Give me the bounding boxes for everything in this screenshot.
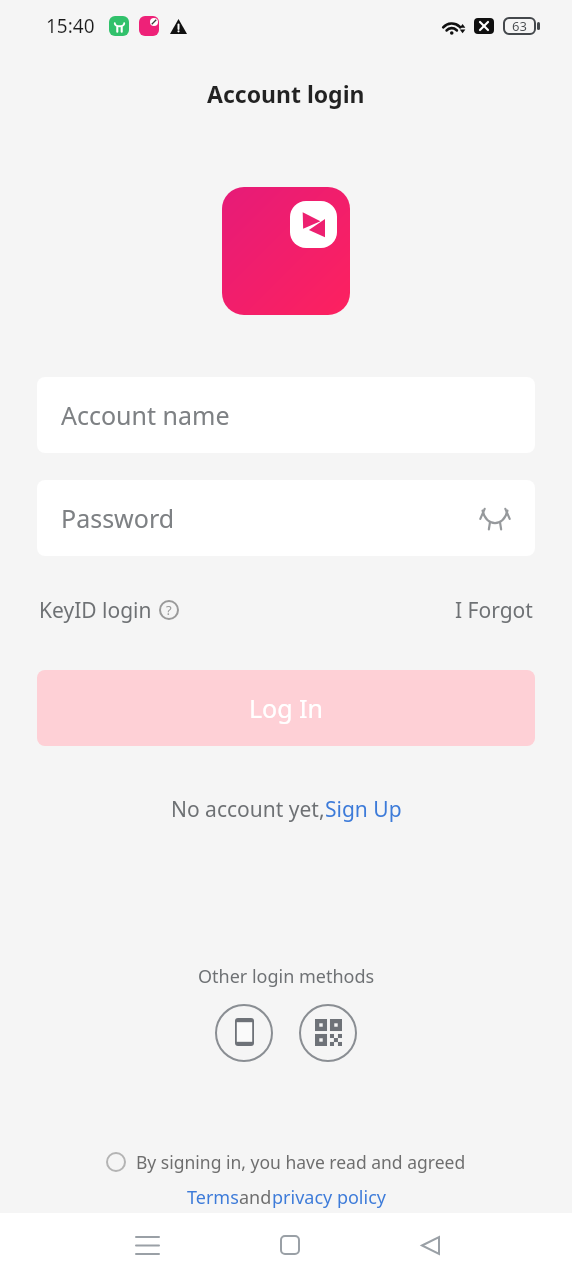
button[interactable]: Agree to terms bbox=[106, 1150, 466, 1174]
staticText: ? bbox=[166, 601, 172, 619]
button[interactable]: KeyID login bbox=[39, 581, 179, 639]
button[interactable]: Show password bbox=[477, 500, 513, 536]
staticText: Terms bbox=[187, 1185, 239, 1210]
staticText: 63 bbox=[512, 17, 527, 35]
staticText: Password bbox=[61, 501, 175, 535]
staticText: Log In bbox=[249, 691, 324, 725]
button[interactable]: Log In bbox=[37, 670, 535, 746]
staticText: privacy policy bbox=[272, 1185, 386, 1210]
staticText: Other login methods bbox=[198, 964, 375, 989]
button[interactable]: Login with QR code bbox=[299, 1004, 357, 1062]
staticText: KeyID login bbox=[39, 596, 152, 625]
button[interactable]: Sign Up bbox=[325, 795, 402, 824]
staticText: By signing in, you have read and agreed bbox=[136, 1150, 466, 1174]
staticText: Account name bbox=[61, 398, 230, 432]
button[interactable]: Login with phone bbox=[215, 1004, 273, 1062]
staticText: and bbox=[239, 1185, 272, 1210]
button[interactable]: Password bbox=[37, 480, 535, 556]
button[interactable]: Terms bbox=[187, 1185, 239, 1210]
button[interactable]: Home bbox=[262, 1217, 318, 1273]
button[interactable]: I Forgot bbox=[455, 581, 533, 639]
staticText: No account yet, bbox=[171, 795, 325, 824]
button[interactable]: Back bbox=[402, 1217, 458, 1273]
button[interactable]: Account name bbox=[37, 377, 535, 453]
staticText: I Forgot bbox=[455, 596, 533, 625]
staticText: 15:40 bbox=[46, 13, 95, 39]
staticText: Account login bbox=[207, 78, 365, 109]
button[interactable]: Recents bbox=[119, 1217, 175, 1273]
staticText: Sign Up bbox=[325, 795, 402, 824]
button[interactable]: privacy policy bbox=[272, 1185, 386, 1210]
